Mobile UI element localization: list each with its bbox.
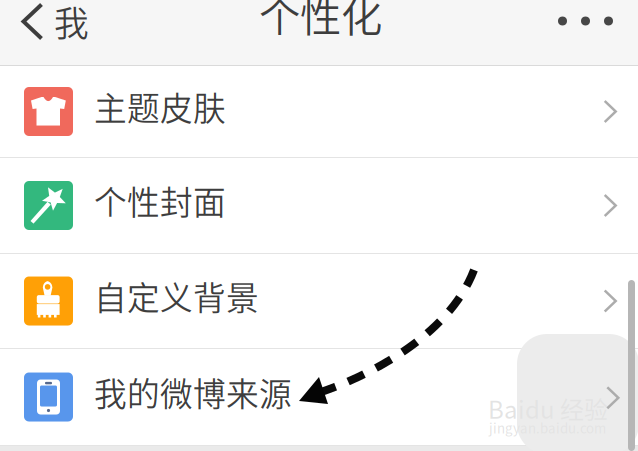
staticText: Baidu 经验 [488,391,608,426]
staticText: 个性封面 [94,177,226,224]
staticText: 我的微博来源 [94,368,292,416]
staticText: 个性化 [259,0,382,44]
button[interactable]: 我 [0,0,101,44]
staticText: 主题皮肤 [94,83,226,130]
staticText: 自定义背景 [94,272,259,320]
staticText: 我 [54,0,89,47]
button[interactable]: 个性封面 [0,158,638,253]
button[interactable]: 自定义背景 [0,254,638,348]
staticText: jingyan.baidu.com [489,418,606,437]
button[interactable]: More options [538,0,633,42]
button[interactable]: 我的微博来源 [0,349,638,445]
button[interactable]: 主题皮肤 [0,66,638,157]
